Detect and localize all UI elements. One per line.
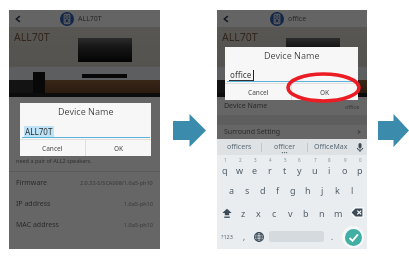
staticText: n [319, 207, 325, 219]
staticText: o [342, 164, 348, 176]
button[interactable]: v [282, 201, 298, 224]
button[interactable]: Device Name [224, 97, 360, 115]
button[interactable]: l [345, 178, 360, 201]
staticText: f [276, 184, 280, 196]
staticText: g [290, 184, 296, 196]
button[interactable]: OK [86, 140, 151, 156]
button[interactable]: ?123 [217, 224, 237, 249]
staticText: OfficeMax [314, 142, 348, 152]
staticText: i [328, 164, 331, 176]
staticText: Surround Setting [224, 127, 281, 137]
button[interactable]: 6 [292, 155, 307, 178]
staticText: MAC address [16, 220, 59, 230]
staticText: x [256, 207, 261, 219]
button[interactable]: Firmware [16, 172, 153, 193]
staticText: office [230, 69, 252, 80]
staticText: h [305, 184, 311, 196]
staticText: ALL70T [222, 30, 258, 44]
staticText: ALL70T [25, 126, 53, 137]
button[interactable]: 4 [262, 155, 277, 178]
button[interactable]: Cancel [225, 84, 291, 100]
staticText: Device Name [224, 101, 268, 111]
button[interactable]: z [236, 201, 251, 224]
button[interactable]: b [298, 201, 314, 224]
button[interactable]: officer [262, 139, 307, 155]
button[interactable]: officers [217, 139, 261, 155]
staticText: 2.0.32-S/SCA008/1.0a5-ph10 [80, 179, 153, 186]
button[interactable]: Cancel [20, 140, 85, 156]
staticText: 7 [314, 157, 317, 163]
button[interactable]: Surround Setting [224, 125, 362, 139]
button[interactable]: 8 [322, 155, 337, 178]
button[interactable]: c [266, 201, 282, 224]
staticText: q [222, 164, 228, 176]
button[interactable]: m [330, 201, 346, 224]
button[interactable]: Back [220, 13, 232, 25]
staticText: y [297, 164, 302, 176]
button[interactable]: Enter [342, 226, 364, 248]
staticText: OK [114, 144, 124, 153]
button[interactable]: a [224, 178, 240, 201]
staticText: Cancel [248, 88, 269, 97]
staticText: s [245, 184, 250, 196]
button[interactable]: d [255, 178, 270, 201]
button[interactable]: 2 [232, 155, 247, 178]
button[interactable]: 7 [307, 155, 322, 178]
button[interactable]: f [270, 178, 285, 201]
button[interactable]: , [237, 224, 251, 249]
staticText: c [272, 207, 277, 219]
staticText: 1 [224, 157, 227, 163]
button[interactable]: IP address [16, 193, 153, 214]
staticText: 9 [344, 157, 347, 163]
staticText: Cancel [42, 144, 63, 153]
staticText: m [334, 207, 343, 219]
staticText: 4 [269, 157, 272, 163]
button[interactable]: j [315, 178, 330, 201]
button[interactable]: Shift [217, 201, 236, 224]
staticText: . [331, 231, 334, 242]
staticText: b [303, 207, 309, 219]
staticText: Firmware [16, 178, 48, 188]
button[interactable]: 0 [352, 155, 367, 178]
button[interactable]: Voice input [353, 139, 367, 155]
staticText: officers [227, 142, 252, 152]
staticText: Device Name [264, 49, 320, 61]
staticText: 2 [239, 157, 242, 163]
staticText: office [345, 103, 360, 110]
staticText: officer [274, 142, 296, 152]
button[interactable]: k [330, 178, 345, 201]
button[interactable]: OfficeMax [308, 139, 353, 155]
button[interactable]: n [314, 201, 330, 224]
staticText: OK [320, 88, 330, 97]
button[interactable]: Backspace [346, 201, 367, 224]
button[interactable]: Change language [251, 224, 267, 249]
button[interactable]: OK [292, 84, 358, 100]
button[interactable]: 3 [247, 155, 262, 178]
button[interactable]: 9 [337, 155, 352, 178]
button[interactable]: . [326, 224, 339, 249]
staticText: 5 [284, 157, 287, 163]
staticText: ?123 [221, 233, 233, 240]
staticText: Device Name [58, 105, 114, 117]
staticText: z [241, 207, 246, 219]
button[interactable]: x [251, 201, 266, 224]
staticText: u [312, 164, 318, 176]
staticText: , [243, 231, 246, 242]
button[interactable]: 5 [277, 155, 292, 178]
staticText: office [288, 14, 307, 24]
button[interactable]: h [300, 178, 315, 201]
staticText: 3 [254, 157, 257, 163]
button[interactable]: MAC address [16, 214, 153, 235]
staticText: r [268, 164, 272, 176]
button[interactable]: 1 [217, 155, 232, 178]
button[interactable]: g [285, 178, 300, 201]
staticText: t [283, 164, 287, 176]
staticText: ALL70T [14, 30, 50, 44]
button[interactable]: Back [12, 13, 24, 25]
button[interactable]: s [240, 178, 255, 201]
staticText: d [260, 184, 266, 196]
staticText: 0 [359, 157, 362, 163]
staticText: a [229, 184, 235, 196]
staticText: e [252, 164, 258, 176]
